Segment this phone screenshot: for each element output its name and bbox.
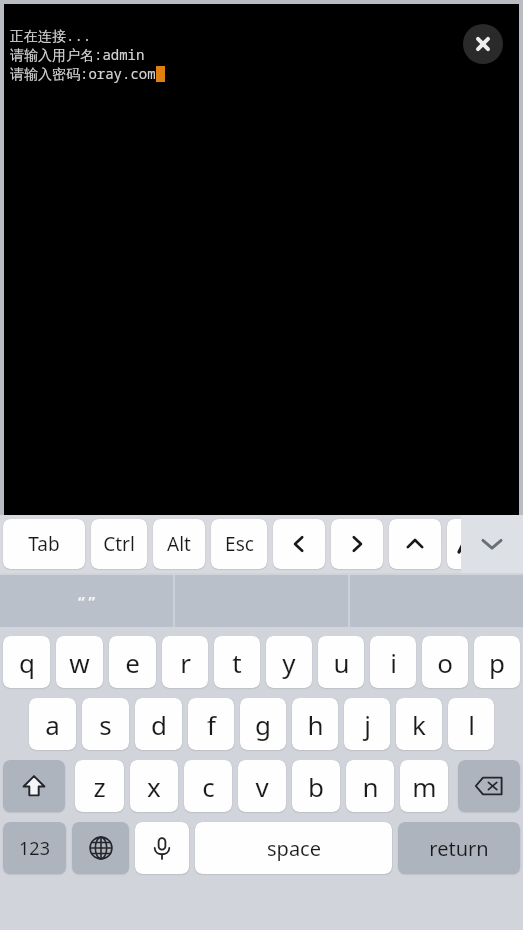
button[interactable]: d — [135, 698, 182, 750]
button[interactable]: Shift — [3, 760, 65, 812]
button[interactable]: w — [56, 636, 103, 688]
button[interactable]: Alt — [153, 519, 205, 569]
button[interactable]: Esc — [211, 519, 267, 569]
button[interactable]: Left — [273, 519, 325, 569]
button[interactable]: Hide keyboard — [461, 515, 523, 573]
button[interactable]: p — [474, 636, 520, 688]
staticText: “ ” — [78, 591, 96, 611]
button[interactable]: v — [238, 760, 286, 812]
staticText: i — [390, 645, 397, 680]
button[interactable]: y — [266, 636, 312, 688]
button[interactable]: l — [448, 698, 494, 750]
staticText: 123 — [19, 836, 50, 861]
button[interactable]: k — [396, 698, 442, 750]
staticText: g — [255, 707, 271, 742]
staticText: Esc — [225, 531, 254, 557]
button[interactable]: m — [400, 760, 448, 812]
staticText: n — [362, 769, 379, 804]
staticText: 请输入密码:oray.com — [10, 64, 156, 83]
staticText: y — [282, 645, 296, 680]
staticText: z — [93, 769, 106, 804]
staticText: t — [232, 645, 242, 680]
staticText: 请输入用户名:admin — [10, 45, 145, 64]
button[interactable]: return — [398, 822, 520, 874]
staticText: o — [437, 645, 453, 680]
staticText: return — [429, 835, 489, 862]
button[interactable]: u — [318, 636, 364, 688]
button[interactable]: Right — [331, 519, 383, 569]
button[interactable]: Switch keyboard — [72, 822, 129, 874]
button[interactable]: r — [162, 636, 208, 688]
staticText: Tab — [28, 531, 60, 557]
button[interactable]: c — [184, 760, 232, 812]
button[interactable]: o — [422, 636, 468, 688]
staticText: f — [207, 707, 216, 742]
staticText: w — [69, 645, 90, 680]
staticText: d — [151, 707, 167, 742]
button[interactable]: a — [29, 698, 76, 750]
staticText: q — [19, 645, 35, 680]
staticText: Ctrl — [103, 531, 135, 557]
button[interactable]: “ ” — [0, 575, 173, 627]
button[interactable]: Dictate — [135, 822, 189, 874]
button[interactable]: g — [240, 698, 286, 750]
staticText: j — [364, 707, 371, 742]
button[interactable]: b — [292, 760, 340, 812]
staticText: k — [412, 707, 426, 742]
staticText: b — [308, 769, 324, 804]
staticText: p — [489, 645, 505, 680]
staticText: s — [99, 707, 112, 742]
button[interactable]: q — [3, 636, 50, 688]
staticText: v — [255, 769, 269, 804]
button[interactable]: z — [75, 760, 124, 812]
button[interactable]: Ctrl — [91, 519, 147, 569]
staticText: r — [180, 645, 191, 680]
button[interactable]: space — [195, 822, 392, 874]
staticText: x — [147, 769, 161, 804]
button[interactable]: t — [214, 636, 260, 688]
staticText: u — [333, 645, 350, 680]
staticText: m — [412, 769, 437, 804]
staticText: h — [307, 707, 324, 742]
button[interactable]: n — [346, 760, 394, 812]
staticText: c — [202, 769, 215, 804]
button[interactable]: Backspace — [458, 760, 520, 812]
button[interactable]: Tab — [3, 519, 85, 569]
button[interactable]: Down — [447, 519, 499, 569]
button[interactable]: i — [370, 636, 416, 688]
staticText: 正在连接... — [10, 26, 92, 45]
button[interactable]: x — [130, 760, 178, 812]
button[interactable]: Up — [389, 519, 441, 569]
button[interactable]: h — [292, 698, 338, 750]
button[interactable]: f — [188, 698, 234, 750]
staticText: a — [45, 707, 60, 742]
button[interactable]: e — [109, 636, 156, 688]
staticText: e — [125, 645, 140, 680]
button[interactable]: 123 — [3, 822, 66, 874]
staticText: space — [267, 835, 321, 862]
button[interactable]: Close — [463, 24, 503, 64]
staticText: Alt — [167, 531, 191, 557]
button[interactable]: s — [82, 698, 129, 750]
staticText: l — [468, 707, 475, 742]
button[interactable]: j — [344, 698, 390, 750]
